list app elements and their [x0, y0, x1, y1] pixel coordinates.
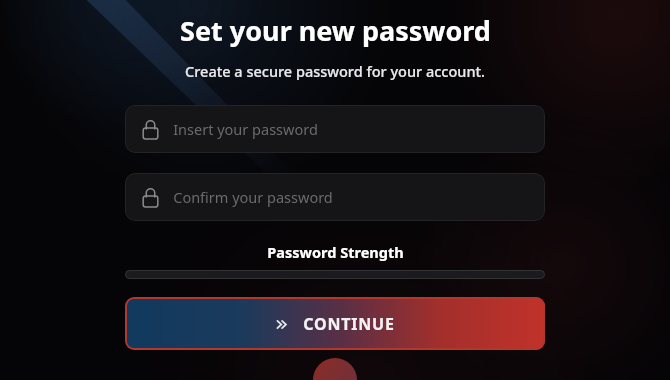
- staticText: CONTINUE: [303, 313, 395, 335]
- button[interactable]: Insert your password: [125, 105, 545, 153]
- staticText: Set your new password: [180, 12, 491, 49]
- button[interactable]: CONTINUE: [125, 297, 545, 350]
- button[interactable]: Confirm your password: [125, 173, 545, 221]
- staticText: Create a secure password for your accoun…: [185, 61, 485, 81]
- button[interactable]: Help: [313, 358, 357, 380]
- staticText: Password Strength: [267, 242, 404, 262]
- staticText: Confirm your password: [173, 187, 333, 207]
- staticText: Insert your password: [173, 119, 318, 139]
